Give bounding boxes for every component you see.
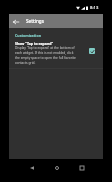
- staticText: 8:13: [90, 5, 99, 11]
- staticText: Customization: [15, 33, 41, 38]
- button[interactable]: Show tap to expand toggle: [89, 48, 95, 54]
- button[interactable]: Recent apps: [73, 159, 90, 176]
- button[interactable]: Show "Tap to expand": [9, 41, 103, 68]
- button[interactable]: Back: [23, 159, 40, 176]
- button[interactable]: Navigate up: [9, 15, 22, 28]
- staticText: Show "Tap to expand": [15, 41, 54, 46]
- staticText: Settings: [26, 18, 44, 24]
- staticText: Display 'Tap to expand' at the bottom of…: [15, 46, 78, 65]
- button[interactable]: Home: [48, 159, 65, 176]
